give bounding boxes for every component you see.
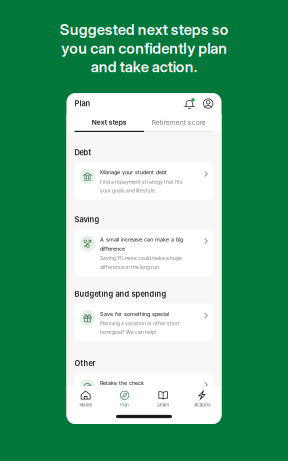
button[interactable]: A small increase can make a big differen…: [74, 229, 213, 277]
button[interactable]: Notifications: [183, 98, 195, 109]
staticText: Retirement score: [152, 118, 206, 126]
button[interactable]: Actions: [183, 390, 222, 408]
staticText: Save for something special: [100, 311, 169, 317]
button[interactable]: Next steps: [74, 118, 144, 132]
button[interactable]: Save for something special: [74, 304, 213, 342]
staticText: Manage your student debt: [100, 169, 167, 176]
staticText: Retake the check: [100, 380, 144, 386]
staticText: Find a repayment strategy that fits your…: [100, 179, 183, 193]
button[interactable]: Profile: [195, 98, 213, 109]
staticText: A small increase can make a big differen…: [100, 236, 183, 252]
staticText: Actions: [194, 402, 210, 408]
button[interactable]: Plan: [105, 390, 144, 408]
button[interactable]: Retake the check: [74, 373, 213, 402]
staticText: Debt: [74, 148, 91, 157]
staticText: Planning a vacation or other short term …: [100, 320, 180, 335]
staticText: Plan: [74, 99, 90, 108]
staticText: Next steps: [92, 118, 127, 126]
staticText: Learn: [157, 402, 169, 408]
staticText: Other: [74, 359, 95, 368]
staticText: Budgeting and spending: [74, 290, 166, 299]
staticText: Plan: [120, 402, 129, 408]
staticText: Saving 1% more could make a huge differe…: [100, 255, 182, 270]
button[interactable]: Learn: [144, 390, 183, 408]
button[interactable]: Home: [66, 390, 105, 408]
staticText: Home: [79, 402, 92, 408]
staticText: Saving: [74, 215, 99, 224]
button[interactable]: Manage your student debt: [74, 162, 213, 200]
button[interactable]: Retirement score: [144, 118, 213, 132]
staticText: Suggested next steps so you can confiden…: [59, 20, 228, 76]
